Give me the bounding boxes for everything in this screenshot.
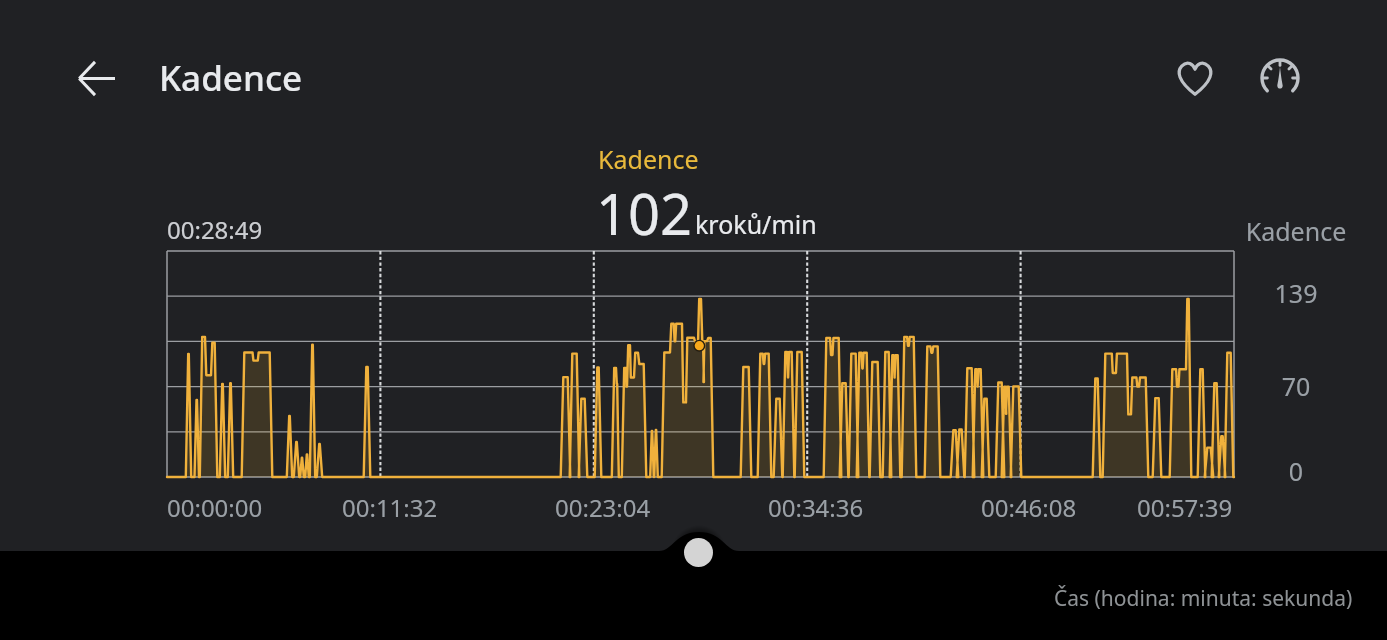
button[interactable]: Favourite — [1160, 43, 1230, 113]
staticText: Čas (hodina: minuta: sekunda) — [1054, 584, 1353, 613]
staticText: 00:28:49 — [167, 213, 263, 246]
button[interactable]: Scrub handle — [684, 538, 713, 567]
button[interactable]: Cadence gauge — [1245, 43, 1315, 113]
staticText: 00:46:08 — [981, 491, 1077, 524]
staticText: Kadence — [159, 54, 303, 102]
button[interactable]: Kadence — [159, 38, 303, 118]
staticText: Kadence — [1216, 214, 1376, 248]
staticText: 00:00:00 — [167, 491, 263, 524]
button[interactable]: Back — [62, 44, 130, 112]
staticText: Kadence — [598, 142, 699, 176]
staticText: 0 — [1216, 454, 1376, 488]
staticText: 00:34:36 — [768, 491, 864, 524]
button[interactable]: Cadence graph — [167, 251, 1234, 477]
staticText: 102 — [596, 175, 693, 251]
staticText: 00:11:32 — [342, 491, 438, 524]
staticText: 00:57:39 — [1137, 491, 1233, 524]
staticText: kroků/min — [695, 207, 817, 241]
staticText: 70 — [1216, 369, 1376, 403]
staticText: 139 — [1216, 276, 1376, 310]
staticText: 00:23:04 — [555, 491, 651, 524]
